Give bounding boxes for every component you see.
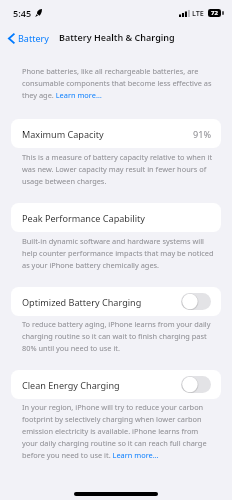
button[interactable]: Toggle [181,293,211,310]
staticText: 72 [211,9,218,17]
button[interactable]: Optimized Battery Charging [11,287,221,316]
staticText: To reduce battery aging, iPhone learns f… [22,318,216,354]
staticText: Peak Performance Capability [22,212,145,224]
staticText: 5:45 [13,7,32,19]
button[interactable]: Peak Performance Capability [11,203,221,232]
staticText: Clean Energy Charging [22,379,120,391]
staticText: Built-in dynamic software and hardware s… [22,235,216,271]
staticText: In your region, iPhone will try to reduc… [22,401,216,461]
staticText: Battery [18,32,49,44]
staticText: 91% [193,128,211,140]
button[interactable]: Maximum Capacity [11,119,221,148]
staticText: This is a measure of battery capacity re… [22,151,216,187]
staticText: Optimized Battery Charging [22,296,142,308]
staticText: Phone batteries, like all rechargeable b… [22,65,216,101]
staticText: LTE [192,8,204,18]
button[interactable]: Battery [5,31,52,44]
button[interactable]: Toggle [181,376,211,393]
staticText: Maximum Capacity [22,128,104,140]
button[interactable]: Clean Energy Charging [11,370,221,399]
staticText: Battery Health & Charging [59,31,175,43]
